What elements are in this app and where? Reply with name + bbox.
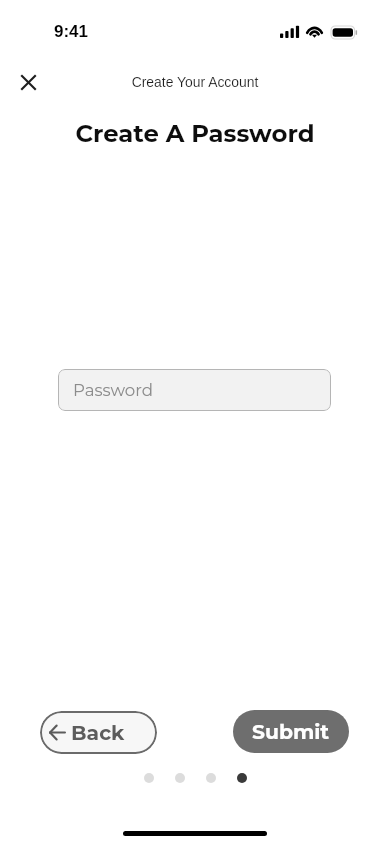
staticText: Create A Password — [0, 118, 390, 148]
button[interactable]: Password — [58, 369, 331, 411]
staticText: Password — [73, 380, 153, 400]
staticText: 9:41 — [54, 22, 89, 41]
staticText: Back — [71, 720, 125, 745]
button[interactable]: Submit — [233, 710, 349, 753]
staticText: Submit — [252, 719, 330, 744]
staticText: Create Your Account — [0, 74, 390, 90]
button[interactable]: Close — [10, 64, 46, 100]
button[interactable]: Back — [40, 711, 157, 754]
